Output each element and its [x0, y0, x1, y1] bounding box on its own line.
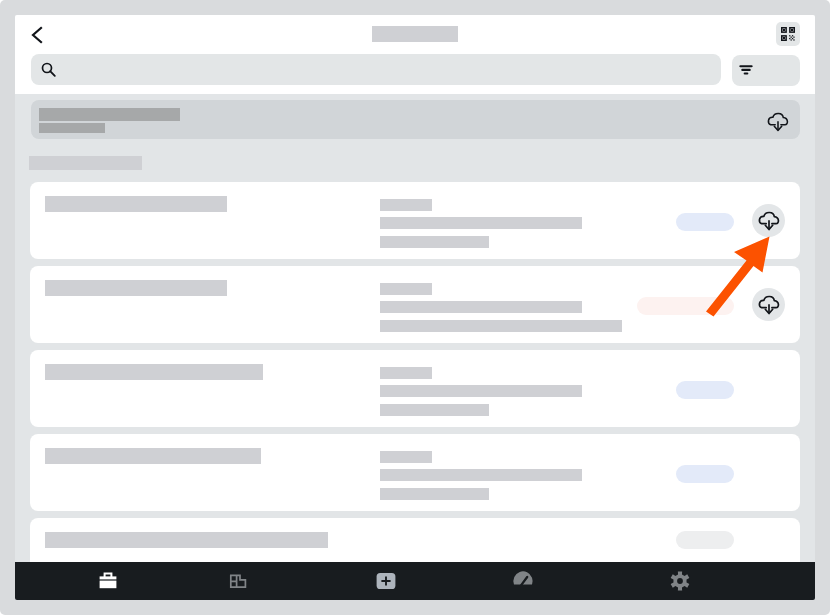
- button[interactable]: Filter: [732, 55, 800, 86]
- button[interactable]: Back: [15, 15, 59, 57]
- button[interactable]: [30, 350, 800, 427]
- button[interactable]: Download all: [765, 109, 791, 135]
- button[interactable]: Diagnostics: [448, 562, 598, 600]
- button[interactable]: Download: [30, 266, 800, 343]
- button[interactable]: Tools: [20, 562, 195, 600]
- button[interactable]: Modules: [165, 562, 310, 600]
- button[interactable]: Download: [752, 288, 785, 321]
- button[interactable]: [30, 434, 800, 511]
- button[interactable]: Download all: [31, 100, 800, 139]
- button[interactable]: Download: [752, 204, 785, 237]
- button[interactable]: Scan QR code: [776, 22, 800, 46]
- button[interactable]: Settings: [605, 562, 755, 600]
- button[interactable]: Download: [30, 182, 800, 259]
- button[interactable]: Add: [316, 562, 456, 600]
- button[interactable]: [31, 54, 721, 85]
- button[interactable]: [30, 518, 800, 595]
